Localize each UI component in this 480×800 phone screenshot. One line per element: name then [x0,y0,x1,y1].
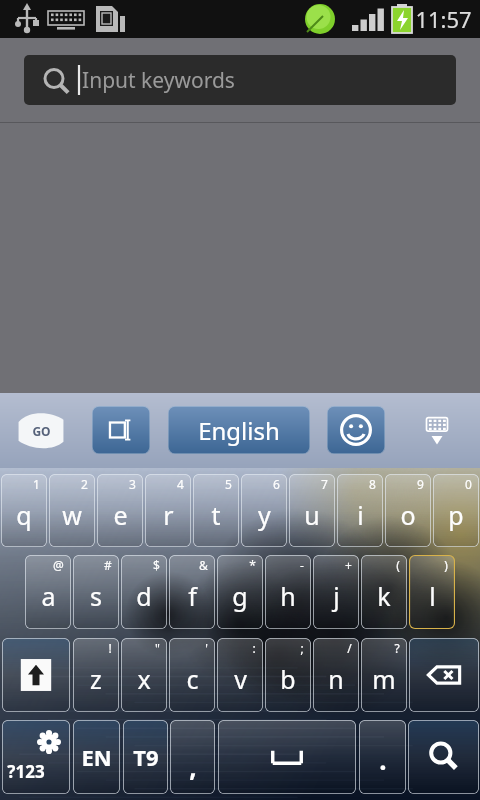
button[interactable]: GO keyboard menu [8,408,74,454]
staticText: f [188,579,197,613]
staticText: l [429,579,436,613]
staticText: : [252,640,256,656]
button[interactable]: Emoji [327,406,385,454]
button[interactable]: : [217,638,263,712]
staticText: q [16,498,32,532]
button[interactable]: 6 [241,474,287,547]
staticText: c [186,662,199,696]
button[interactable]: + [313,555,359,629]
staticText: s [90,579,102,613]
button[interactable]: 4 [145,474,191,547]
staticText: EN [81,742,112,772]
staticText: y [258,498,271,532]
staticText: o [400,498,416,532]
button[interactable]: Hide keyboard [408,406,466,454]
button[interactable]: 2 [49,474,95,547]
staticText: - [300,557,304,573]
button[interactable]: Shift [2,638,70,712]
staticText: ) [444,557,448,573]
staticText: T9 [133,742,159,772]
button[interactable]: 3 [97,474,143,547]
staticText: d [136,579,152,613]
button[interactable]: 8 [337,474,383,547]
button[interactable]: . [359,720,406,794]
staticText: + [345,557,352,573]
button[interactable]: - [265,555,311,629]
staticText: r [163,498,174,532]
button[interactable]: * [217,555,263,629]
staticText: u [304,498,320,532]
staticText: 6 [273,476,280,492]
staticText: , [189,749,197,784]
staticText: $ [153,557,160,573]
button[interactable]: 9 [385,474,431,547]
button[interactable]: " [121,638,167,712]
button[interactable]: Space [218,720,356,794]
staticText: ? [394,640,400,656]
staticText: ?123 [7,760,45,783]
button[interactable]: 7 [289,474,335,547]
staticText: t [211,498,221,532]
staticText: 2 [81,476,88,492]
staticText: 8 [369,476,376,492]
staticText: b [280,662,296,696]
staticText: & [199,557,208,573]
button[interactable]: Backspace [409,638,479,712]
staticText: 9 [417,476,424,492]
button[interactable]: Input keywords [24,55,456,105]
staticText: e [113,498,128,532]
staticText: n [328,662,344,696]
staticText: z [90,662,102,696]
button[interactable]: Keyboard layout [92,406,150,454]
staticText: English [198,414,280,447]
staticText: 4 [177,476,184,492]
staticText: w [62,498,82,532]
staticText: ' [205,640,208,656]
button[interactable]: @ [25,555,71,629]
staticText: / [347,640,352,656]
button[interactable]: $ [121,555,167,629]
staticText: g [232,579,248,613]
staticText: a [41,579,56,613]
button[interactable]: T9 mode [123,720,168,794]
button[interactable]: Language EN [73,720,120,794]
button[interactable]: # [73,555,119,629]
staticText: . [379,742,387,777]
staticText: i [357,498,364,532]
button[interactable]: English language [168,406,310,454]
staticText: h [280,579,296,613]
staticText: " [155,640,160,656]
button[interactable]: , [170,720,215,794]
button[interactable]: ; [265,638,311,712]
button[interactable]: ( [361,555,407,629]
button[interactable]: 5 [193,474,239,547]
button[interactable]: ' [169,638,215,712]
button[interactable]: ! [73,638,119,712]
button[interactable]: ) [409,555,455,629]
staticText: j [333,579,340,613]
button[interactable]: Search [408,720,479,794]
staticText: 7 [321,476,328,492]
staticText: 3 [129,476,136,492]
button[interactable]: 1 [1,474,47,547]
staticText: 1 [33,476,40,492]
staticText: x [137,662,151,696]
button[interactable]: & [169,555,215,629]
button[interactable]: 0 [433,474,479,547]
staticText: * [249,557,256,573]
staticText: ( [396,557,400,573]
staticText: k [377,579,391,613]
staticText: 11:57 [415,4,472,34]
staticText: ! [108,640,112,656]
button[interactable]: ? [361,638,407,712]
staticText: # [104,557,112,573]
staticText: p [448,498,464,532]
button[interactable]: / [313,638,359,712]
button[interactable]: Symbols and settings [2,720,70,794]
staticText: 0 [465,476,472,492]
staticText: GO [32,423,51,439]
staticText: m [372,662,396,696]
staticText: 5 [225,476,232,492]
staticText: ; [300,640,304,656]
staticText: v [234,662,247,696]
